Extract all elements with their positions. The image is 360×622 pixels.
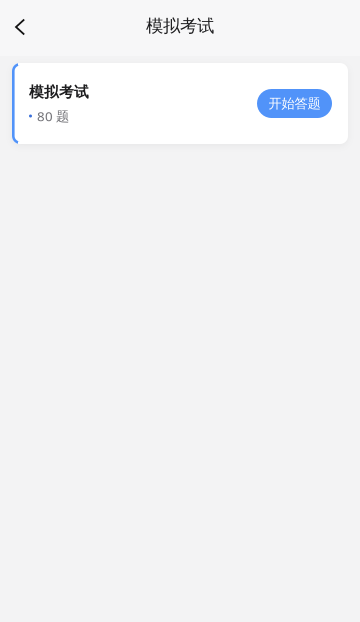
staticText: 开始答题 xyxy=(268,95,320,112)
staticText: 模拟考试 xyxy=(29,83,89,101)
staticText: 80 题 xyxy=(37,107,69,125)
staticText: 模拟考试 xyxy=(146,15,214,37)
button[interactable]: 开始答题 xyxy=(257,89,332,118)
button[interactable]: Back xyxy=(0,6,40,50)
